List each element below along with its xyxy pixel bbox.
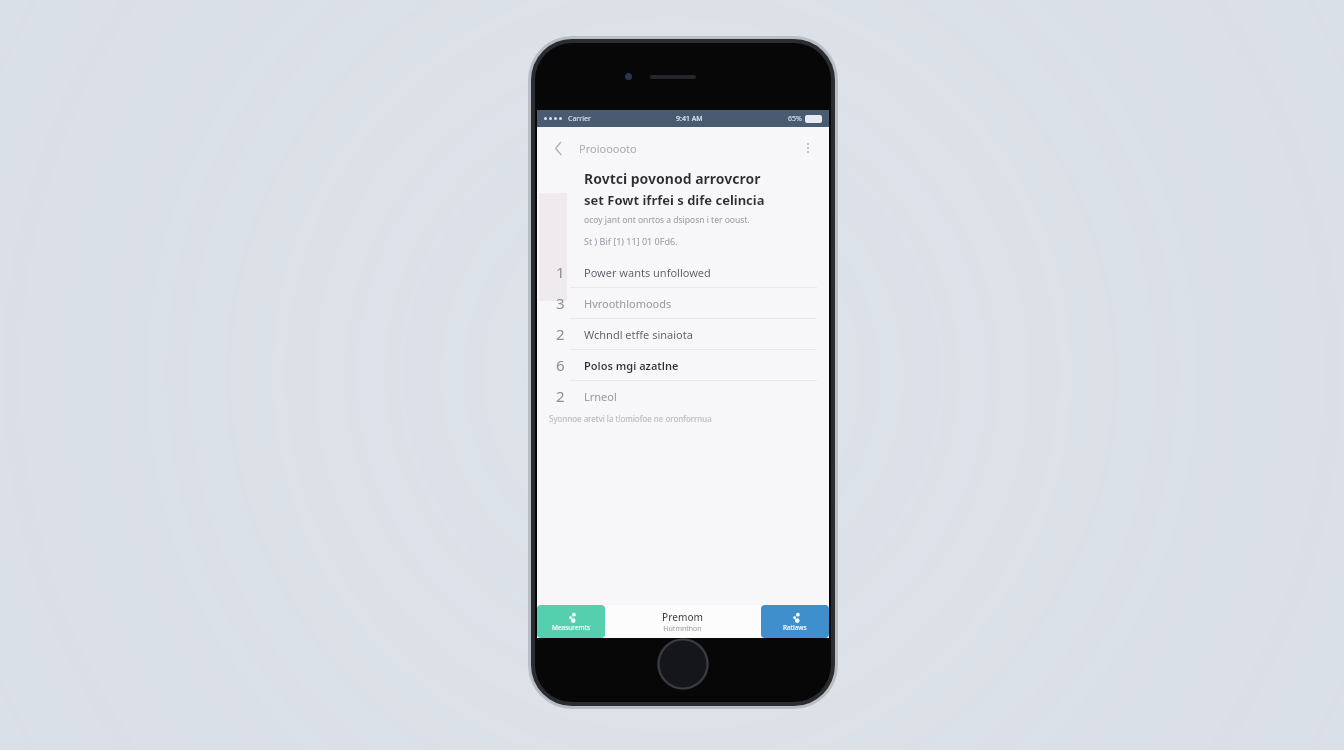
staticText: 9:41 AM <box>676 114 703 124</box>
staticText: Power wants unfollowed <box>584 265 711 280</box>
staticText: Hvroothlomoods <box>584 296 672 311</box>
button[interactable]: Premom <box>662 610 703 634</box>
staticText: 65% <box>788 114 802 124</box>
staticText: Polos mgi azatlne <box>584 358 679 373</box>
staticText: 2 <box>556 324 565 344</box>
button[interactable]: 6 <box>537 350 829 380</box>
staticText: 6 <box>556 355 565 375</box>
button[interactable]: 3 <box>537 288 829 318</box>
staticText: Lrneol <box>584 389 617 404</box>
button[interactable]: Results <box>761 605 829 638</box>
button[interactable]: 1 <box>537 257 829 287</box>
staticText: Ratlaws <box>783 623 807 632</box>
staticText: Wchndl etffe sinaiota <box>584 327 693 342</box>
staticText: Rovtci povonod arrovcror <box>584 169 761 188</box>
button[interactable]: 2 <box>537 381 829 411</box>
staticText: Hutmnthon <box>663 624 702 634</box>
staticText: Syonnoe aretvi la tlomiofoe ne oronforrn… <box>549 413 712 424</box>
staticText: Proiooooto <box>579 141 637 156</box>
staticText: Premom <box>662 610 703 624</box>
button[interactable]: Measure <box>537 605 605 638</box>
staticText: 2 <box>556 386 565 406</box>
staticText: Carrier <box>568 114 591 124</box>
staticText: set Fowt ifrfei s dife celincia <box>584 191 765 209</box>
staticText: Measuremts <box>552 623 591 632</box>
button[interactable]: Back <box>537 127 579 169</box>
staticText: St ) Bif [1) 11] 01 0Fd6. <box>584 235 678 247</box>
button[interactable]: More options <box>787 127 829 169</box>
button[interactable]: 2 <box>537 319 829 349</box>
staticText: 3 <box>556 293 565 313</box>
staticText: 1 <box>556 262 565 282</box>
staticText: ocoy jant ont onrtos a dsiposn i ter oou… <box>584 214 750 226</box>
